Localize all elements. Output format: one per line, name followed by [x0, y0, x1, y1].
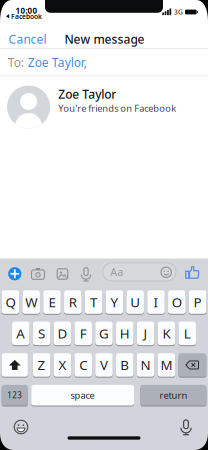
button[interactable]: F: [74, 321, 92, 346]
button[interactable]: Dictation: [179, 419, 192, 435]
button[interactable]: Photo library: [57, 268, 68, 280]
staticText: J: [144, 324, 148, 342]
button[interactable]: H: [116, 321, 133, 346]
button[interactable]: Q: [2, 290, 19, 314]
staticText: return: [159, 389, 187, 401]
button[interactable]: Record voice message: [80, 266, 92, 282]
staticText: X: [58, 356, 66, 374]
button[interactable]: return: [140, 384, 206, 406]
button[interactable]: Type a message: [102, 262, 176, 281]
button[interactable]: To: Zoe Taylor: [0, 49, 208, 75]
button[interactable]: W: [22, 290, 40, 314]
staticText: Q: [5, 293, 15, 311]
button[interactable]: R: [64, 290, 82, 314]
button[interactable]: M: [158, 353, 175, 377]
button[interactable]: space: [31, 384, 134, 406]
button[interactable]: Choose emoji: [160, 267, 172, 278]
staticText: K: [162, 324, 170, 342]
button[interactable]: Emoji keyboard: [14, 420, 28, 434]
staticText: To:: [8, 54, 24, 70]
button[interactable]: K: [158, 321, 175, 346]
staticText: space: [71, 389, 95, 401]
staticText: I: [153, 293, 158, 311]
button[interactable]: J: [137, 321, 154, 346]
button[interactable]: I: [147, 290, 165, 314]
button[interactable]: Cancel: [8, 31, 68, 47]
staticText: 10:00: [15, 5, 37, 16]
staticText: Cancel: [8, 31, 46, 47]
staticText: L: [184, 324, 191, 342]
button[interactable]: X: [54, 353, 71, 377]
button[interactable]: B: [116, 353, 134, 377]
staticText: Aa: [110, 265, 123, 279]
staticText: Zoe Taylor,: [28, 54, 87, 70]
staticText: O: [172, 293, 182, 311]
staticText: You're friends on Facebook: [58, 102, 176, 114]
staticText: G: [99, 324, 109, 342]
button[interactable]: E: [43, 290, 61, 314]
staticText: Z: [38, 356, 46, 374]
button[interactable]: T: [85, 290, 102, 314]
button[interactable]: Back to Facebook: [6, 12, 42, 21]
button[interactable]: Shift: [2, 353, 28, 377]
button[interactable]: C: [74, 353, 92, 377]
button[interactable]: N: [137, 353, 154, 377]
staticText: D: [57, 324, 67, 342]
button[interactable]: Send a like: [185, 265, 200, 280]
staticText: V: [100, 356, 108, 374]
staticText: N: [141, 356, 151, 374]
button[interactable]: Delete: [178, 353, 206, 377]
button[interactable]: Y: [106, 290, 123, 314]
staticText: New message: [64, 31, 144, 47]
staticText: C: [79, 356, 87, 374]
staticText: A: [16, 324, 25, 342]
button[interactable]: U: [126, 290, 144, 314]
button[interactable]: A: [12, 321, 30, 346]
staticText: W: [25, 293, 37, 311]
staticText: 123: [7, 390, 22, 400]
button[interactable]: Zoe Taylor, You're friends on Facebook: [0, 76, 208, 133]
staticText: T: [90, 293, 97, 311]
staticText: E: [48, 293, 55, 311]
staticText: H: [120, 324, 130, 342]
staticText: 3G: [174, 7, 183, 16]
staticText: Y: [110, 293, 118, 311]
staticText: U: [130, 293, 140, 311]
button[interactable]: 123: [2, 384, 28, 406]
button[interactable]: V: [95, 353, 113, 377]
staticText: F: [80, 324, 87, 342]
button[interactable]: P: [189, 290, 206, 314]
button[interactable]: Take photo: [30, 267, 45, 281]
button[interactable]: O: [168, 290, 186, 314]
staticText: P: [194, 293, 202, 311]
staticText: Facebook: [11, 12, 42, 21]
staticText: R: [69, 293, 77, 311]
button[interactable]: L: [178, 321, 196, 346]
button[interactable]: S: [33, 321, 50, 346]
button[interactable]: Open menu: [7, 266, 23, 282]
staticText: Zoe Taylor: [58, 86, 116, 102]
staticText: S: [38, 324, 45, 342]
button[interactable]: D: [54, 321, 71, 346]
button[interactable]: G: [95, 321, 113, 346]
staticText: B: [120, 356, 129, 374]
staticText: M: [160, 356, 172, 374]
button[interactable]: Z: [33, 353, 50, 377]
